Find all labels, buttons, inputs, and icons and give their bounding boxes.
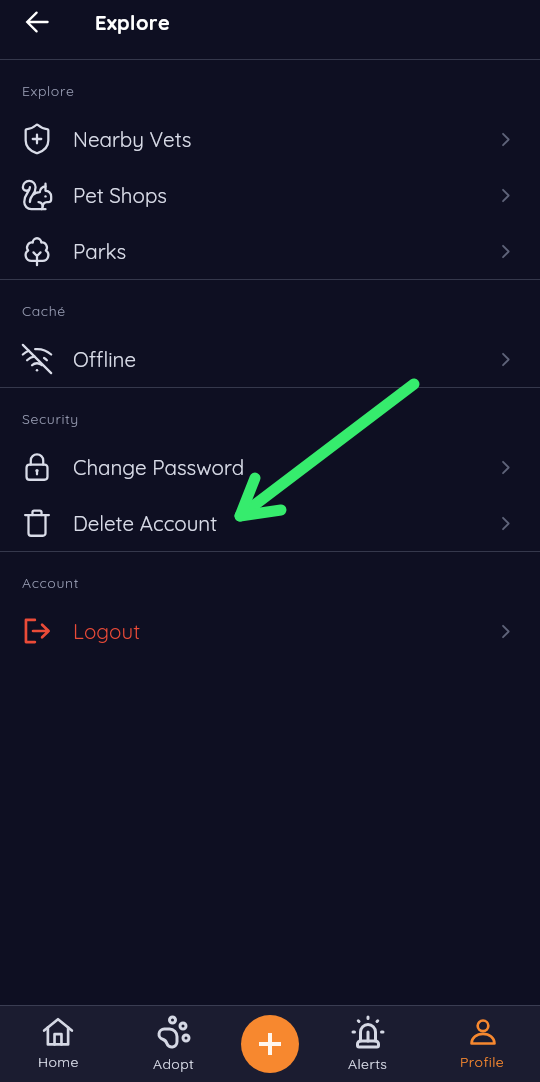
staticText: Security — [22, 410, 79, 428]
button[interactable]: Home — [0, 1005, 116, 1082]
button[interactable]: Parks — [0, 223, 540, 279]
staticText: Pet Shops — [73, 182, 167, 208]
staticText: Account — [22, 574, 80, 592]
staticText: Nearby Vets — [73, 126, 192, 152]
button[interactable]: Pet Shops — [0, 167, 540, 223]
button[interactable]: Add — [241, 1015, 299, 1073]
staticText: Alerts — [348, 1055, 388, 1073]
staticText: Explore — [95, 10, 171, 35]
button[interactable]: Profile — [425, 1005, 540, 1082]
button[interactable]: Logout — [0, 603, 540, 659]
staticText: Change Password — [73, 454, 245, 480]
button[interactable]: Nearby Vets — [0, 111, 540, 167]
staticText: Profile — [460, 1053, 505, 1071]
button[interactable]: Adopt — [116, 1005, 232, 1082]
staticText: Caché — [22, 302, 66, 320]
button[interactable]: Change Password — [0, 439, 540, 495]
staticText: Offline — [73, 346, 136, 372]
button[interactable]: Back — [9, 0, 65, 50]
staticText: Explore — [22, 82, 75, 100]
staticText: Logout — [73, 618, 141, 644]
staticText: Adopt — [153, 1055, 195, 1073]
staticText: Home — [38, 1053, 79, 1071]
button[interactable]: Alerts — [310, 1005, 425, 1082]
staticText: Delete Account — [73, 510, 218, 536]
button[interactable]: Delete Account — [0, 495, 540, 551]
staticText: Parks — [73, 238, 127, 264]
button[interactable]: Offline — [0, 331, 540, 387]
